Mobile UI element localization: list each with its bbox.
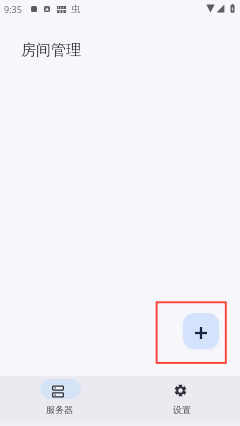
button[interactable]: 服务器	[19, 376, 99, 426]
staticText: 9:35	[4, 3, 22, 15]
staticText: 设置	[173, 404, 191, 415]
staticText: 房间管理	[21, 41, 81, 60]
staticText: 虫	[71, 3, 81, 15]
button[interactable]: Add room	[183, 313, 219, 349]
button[interactable]: 设置	[142, 376, 222, 426]
staticText: 服务器	[46, 404, 73, 415]
